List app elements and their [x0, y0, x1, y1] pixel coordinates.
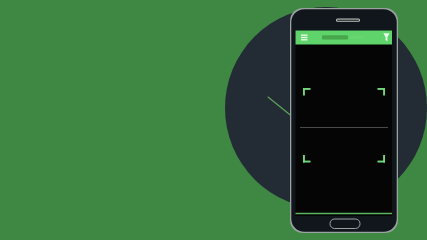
button[interactable]: Open navigation menu: [296, 31, 310, 45]
button[interactable]: Barcode scanner viewfinder: [300, 86, 388, 164]
button[interactable]: Filter results: [379, 31, 392, 45]
button[interactable]: Home button: [330, 218, 361, 230]
